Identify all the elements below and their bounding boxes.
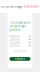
staticText: Valider — [15, 57, 25, 61]
staticText: Choisissez votre — [9, 21, 30, 24]
staticText: Gandalf — [9, 38, 19, 41]
button[interactable]: Legolas — [9, 41, 30, 44]
button[interactable]: Valider — [9, 57, 30, 61]
staticText: Aragorn — [9, 34, 20, 38]
staticText: à découvrir — [24, 5, 39, 8]
staticText: Frodon — [9, 44, 19, 48]
button[interactable]: Aragorn — [9, 35, 30, 38]
staticText: ou bien — [14, 49, 26, 53]
staticText: Un personnage — [1, 5, 24, 8]
staticText: Legolas — [9, 41, 19, 44]
button[interactable]: Frodon — [9, 44, 30, 47]
staticText: personnage préféré — [9, 24, 26, 32]
button[interactable]: Gandalf — [9, 38, 30, 41]
